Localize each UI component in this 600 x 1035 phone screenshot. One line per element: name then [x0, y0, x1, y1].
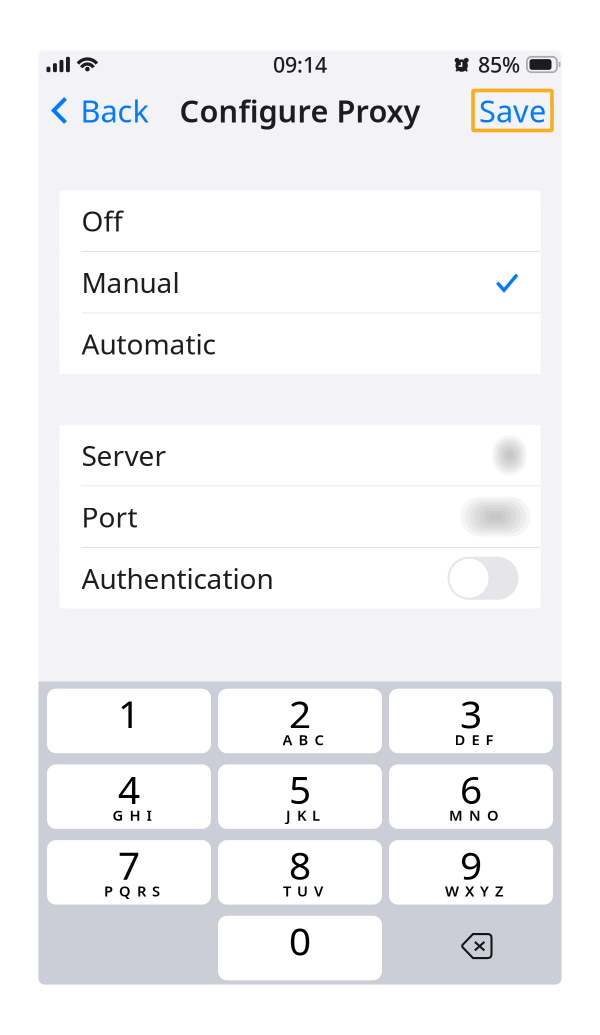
- staticText: WXYZ: [445, 881, 503, 901]
- button[interactable]: Delete: [389, 916, 553, 980]
- staticText: Save: [479, 90, 546, 131]
- button[interactable]: 0: [218, 916, 382, 980]
- button[interactable]: 9: [389, 840, 553, 905]
- staticText: 2: [289, 688, 311, 739]
- button[interactable]: Authentication: [59, 548, 540, 608]
- staticText: Back: [80, 90, 148, 131]
- button[interactable]: Save: [472, 85, 552, 126]
- staticText: ABC: [282, 730, 323, 749]
- button[interactable]: 3: [389, 689, 553, 753]
- staticText: 3: [460, 688, 482, 739]
- button[interactable]: Port: [59, 486, 540, 547]
- staticText: DEF: [454, 730, 493, 749]
- button[interactable]: 7: [47, 840, 211, 905]
- staticText: 6: [460, 763, 482, 815]
- staticText: GHI: [112, 805, 151, 825]
- staticText: Server: [81, 437, 166, 474]
- staticText: 9: [460, 839, 482, 890]
- button[interactable]: Manual: [59, 252, 540, 312]
- button[interactable]: 8: [218, 840, 382, 905]
- button[interactable]: 1: [47, 689, 211, 753]
- staticText: 1: [118, 688, 140, 739]
- button[interactable]: Off: [59, 190, 540, 251]
- button[interactable]: Automatic: [59, 313, 540, 374]
- staticText: 85%: [478, 50, 520, 79]
- staticText: Off: [81, 202, 122, 239]
- staticText: JKL: [286, 805, 320, 825]
- staticText: Configure Proxy: [179, 90, 420, 131]
- staticText: 5: [289, 763, 311, 815]
- button[interactable]: 6: [389, 764, 553, 829]
- staticText: Manual: [81, 264, 179, 301]
- staticText: 7: [118, 839, 140, 890]
- button[interactable]: 4: [47, 764, 211, 829]
- staticText: 4: [118, 763, 140, 815]
- staticText: Port: [81, 498, 137, 535]
- staticText: 8: [289, 839, 311, 890]
- staticText: TUV: [283, 881, 323, 901]
- staticText: Authentication: [81, 560, 273, 597]
- button[interactable]: 2: [218, 689, 382, 753]
- staticText: 09:14: [273, 50, 327, 79]
- staticText: PQRS: [104, 881, 160, 901]
- staticText: 0: [289, 915, 311, 966]
- button[interactable]: Server: [59, 425, 540, 485]
- button[interactable]: 5: [218, 764, 382, 829]
- staticText: Automatic: [81, 325, 215, 362]
- button[interactable]: Back: [38, 83, 158, 127]
- staticText: MNO: [449, 805, 499, 825]
